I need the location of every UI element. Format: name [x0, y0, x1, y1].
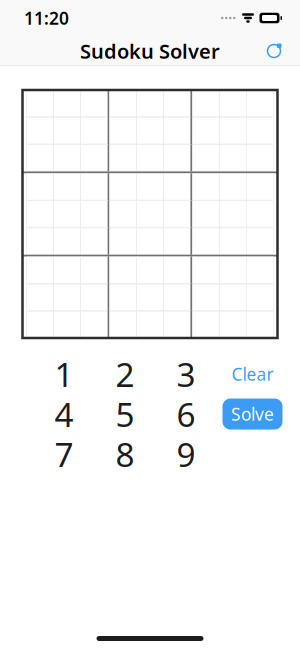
button[interactable]: Empty cell: [27, 90, 54, 117]
button[interactable]: Empty cell: [219, 311, 246, 338]
button[interactable]: 1: [33, 354, 94, 394]
button[interactable]: 5: [94, 394, 155, 434]
button[interactable]: 8: [94, 434, 155, 474]
button[interactable]: Empty cell: [192, 145, 219, 171]
button[interactable]: Reset puzzle: [259, 36, 289, 66]
button[interactable]: 4: [33, 394, 94, 434]
button[interactable]: Empty cell: [163, 311, 190, 338]
staticText: Sudoku Solver: [80, 38, 220, 64]
button[interactable]: Empty cell: [246, 201, 273, 227]
staticText: 4: [54, 392, 73, 436]
button[interactable]: Empty cell: [246, 257, 273, 283]
button[interactable]: Empty cell: [192, 90, 219, 117]
button[interactable]: Empty cell: [219, 201, 246, 227]
staticText: 1: [54, 352, 73, 396]
button[interactable]: Empty cell: [109, 311, 136, 338]
button[interactable]: Empty cell: [27, 201, 54, 227]
button[interactable]: Empty cell: [163, 90, 190, 117]
button[interactable]: Empty cell: [246, 90, 273, 117]
button[interactable]: Empty cell: [54, 201, 81, 227]
button[interactable]: Empty cell: [192, 201, 219, 227]
button[interactable]: Empty cell: [136, 201, 163, 227]
button[interactable]: Empty cell: [54, 145, 81, 171]
button[interactable]: Empty cell: [81, 145, 108, 171]
button[interactable]: Empty cell: [136, 228, 163, 254]
button[interactable]: Empty cell: [192, 257, 219, 283]
button[interactable]: Clear: [216, 354, 288, 394]
button[interactable]: Empty cell: [54, 228, 81, 254]
staticText: 6: [176, 392, 195, 436]
button[interactable]: Empty cell: [192, 311, 219, 338]
button[interactable]: Empty cell: [81, 257, 108, 283]
button[interactable]: Empty cell: [81, 228, 108, 254]
button[interactable]: Empty cell: [192, 117, 219, 144]
button[interactable]: Empty cell: [136, 174, 163, 200]
button[interactable]: Empty cell: [81, 117, 108, 144]
button[interactable]: 3: [155, 354, 216, 394]
button[interactable]: Empty cell: [246, 174, 273, 200]
button[interactable]: Empty cell: [219, 117, 246, 144]
staticText: 2: [115, 352, 134, 396]
button[interactable]: Empty cell: [81, 174, 108, 200]
button[interactable]: Empty cell: [136, 117, 163, 144]
button[interactable]: Empty cell: [54, 174, 81, 200]
button[interactable]: Solve: [222, 398, 282, 429]
button[interactable]: Empty cell: [54, 90, 81, 117]
button[interactable]: Empty cell: [54, 117, 81, 144]
button[interactable]: Empty cell: [27, 174, 54, 200]
button[interactable]: Empty cell: [54, 284, 81, 310]
button[interactable]: Empty cell: [246, 145, 273, 171]
button[interactable]: Empty cell: [81, 284, 108, 310]
button[interactable]: Empty cell: [219, 145, 246, 171]
button[interactable]: Empty cell: [27, 228, 54, 254]
button[interactable]: 6: [155, 394, 216, 434]
button[interactable]: Empty cell: [136, 145, 163, 171]
button[interactable]: Empty cell: [27, 145, 54, 171]
button[interactable]: Empty cell: [219, 174, 246, 200]
button[interactable]: Empty cell: [219, 257, 246, 283]
button[interactable]: Empty cell: [246, 311, 273, 338]
staticText: 8: [115, 432, 134, 476]
button[interactable]: Empty cell: [192, 228, 219, 254]
button[interactable]: Empty cell: [136, 90, 163, 117]
button[interactable]: Empty cell: [246, 228, 273, 254]
button[interactable]: Empty cell: [27, 311, 54, 338]
button[interactable]: Empty cell: [219, 284, 246, 310]
button[interactable]: Empty cell: [27, 257, 54, 283]
button[interactable]: Empty cell: [27, 284, 54, 310]
button[interactable]: Empty cell: [219, 228, 246, 254]
button[interactable]: Empty cell: [27, 117, 54, 144]
staticText: 11:20: [24, 6, 69, 29]
button[interactable]: Empty cell: [136, 311, 163, 338]
button[interactable]: Empty cell: [192, 284, 219, 310]
button[interactable]: 2: [94, 354, 155, 394]
button[interactable]: Empty cell: [81, 311, 108, 338]
button[interactable]: Empty cell: [246, 117, 273, 144]
button[interactable]: Empty cell: [81, 201, 108, 227]
button[interactable]: Empty cell: [192, 174, 219, 200]
button[interactable]: Empty cell: [54, 311, 81, 338]
button[interactable]: 9: [155, 434, 216, 474]
button[interactable]: Empty cell: [109, 90, 136, 117]
button[interactable]: Empty cell: [81, 90, 108, 117]
button[interactable]: Empty cell: [136, 284, 163, 310]
button[interactable]: Empty cell: [246, 284, 273, 310]
button[interactable]: Empty cell: [54, 257, 81, 283]
button[interactable]: Empty cell: [219, 90, 246, 117]
button[interactable]: Empty cell: [136, 257, 163, 283]
button[interactable]: 7: [33, 434, 94, 474]
